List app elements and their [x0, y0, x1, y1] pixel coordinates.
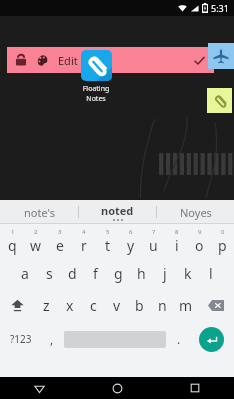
button[interactable]: k: [176, 257, 199, 289]
staticText: ?123: [10, 332, 32, 346]
staticText: 2: [34, 228, 38, 236]
staticText: e: [56, 236, 64, 255]
staticText: q: [8, 236, 17, 255]
staticText: 6: [129, 228, 133, 236]
button[interactable]: Lock: [7, 47, 214, 73]
staticText: i: [175, 236, 179, 255]
button[interactable]: n: [151, 289, 174, 321]
staticText: ,: [50, 331, 54, 347]
staticText: y: [127, 236, 135, 255]
button[interactable]: l: [199, 257, 222, 289]
staticText: Noyes: [180, 205, 212, 220]
staticText: note's: [24, 205, 55, 220]
button[interactable]: 7: [142, 225, 165, 257]
staticText: 8: [175, 228, 179, 236]
button[interactable]: .: [168, 321, 189, 357]
staticText: s: [46, 264, 53, 283]
button[interactable]: 6: [119, 225, 142, 257]
staticText: j: [163, 264, 167, 283]
staticText: r: [81, 236, 87, 255]
button[interactable]: 3: [48, 225, 72, 257]
staticText: 5:31: [211, 2, 229, 14]
staticText: n: [158, 296, 167, 315]
button[interactable]: Attach note: [207, 88, 232, 113]
staticText: v: [113, 296, 121, 315]
staticText: 9: [198, 228, 202, 236]
button[interactable]: d: [61, 257, 84, 289]
staticText: u: [149, 236, 158, 255]
button[interactable]: 9: [188, 225, 211, 257]
staticText: noted: [101, 203, 134, 218]
staticText: k: [184, 264, 192, 283]
button[interactable]: 0: [211, 225, 234, 257]
staticText: 4: [82, 228, 86, 236]
button[interactable]: Airplane mode: [208, 43, 234, 69]
button[interactable]: ,: [41, 321, 62, 357]
staticText: z: [43, 296, 50, 315]
button[interactable]: note's: [0, 200, 78, 224]
staticText: l: [209, 264, 213, 283]
staticText: f: [93, 264, 98, 283]
staticText: g: [114, 264, 123, 283]
button[interactable]: b: [128, 289, 151, 321]
button[interactable]: ?123: [0, 321, 41, 357]
staticText: b: [135, 296, 144, 315]
button[interactable]: Enter: [199, 327, 224, 352]
button[interactable]: 2: [24, 225, 48, 257]
staticText: 5: [106, 228, 110, 236]
button[interactable]: s: [37, 257, 61, 289]
button[interactable]: Backspace: [197, 289, 234, 321]
button[interactable]: a: [13, 257, 37, 289]
button[interactable]: noted: [79, 200, 156, 224]
staticText: c: [90, 296, 97, 315]
button[interactable]: 4: [72, 225, 96, 257]
button[interactable]: m: [174, 289, 197, 321]
button[interactable]: Home: [78, 377, 156, 399]
staticText: Edit: [58, 53, 81, 68]
staticText: a: [21, 264, 29, 283]
button[interactable]: Color palette: [34, 52, 50, 68]
staticText: p: [218, 236, 227, 255]
staticText: t: [105, 236, 111, 255]
button[interactable]: v: [105, 289, 128, 321]
button[interactable]: Shift: [0, 289, 34, 321]
staticText: h: [137, 264, 146, 283]
staticText: x: [66, 296, 74, 315]
button[interactable]: j: [153, 257, 176, 289]
staticText: 1: [11, 228, 15, 236]
staticText: w: [30, 236, 42, 255]
button[interactable]: Floating Notes: [74, 50, 118, 104]
button[interactable]: Done: [190, 51, 208, 69]
button[interactable]: 8: [165, 225, 188, 257]
staticText: d: [68, 264, 77, 283]
button[interactable]: Noyes: [157, 200, 234, 224]
button[interactable]: g: [107, 257, 130, 289]
button[interactable]: Lock: [13, 52, 29, 68]
staticText: 3: [58, 228, 62, 236]
staticText: .: [177, 331, 181, 347]
button[interactable]: 1: [0, 225, 24, 257]
button[interactable]: f: [84, 257, 107, 289]
button[interactable]: h: [130, 257, 153, 289]
button[interactable]: Back: [0, 377, 78, 399]
button[interactable]: Recent apps: [156, 377, 234, 399]
staticText: 0: [221, 228, 225, 236]
button[interactable]: z: [34, 289, 58, 321]
staticText: o: [195, 236, 204, 255]
button[interactable]: c: [82, 289, 105, 321]
button[interactable]: 5: [96, 225, 119, 257]
button[interactable]: x: [58, 289, 82, 321]
staticText: 7: [152, 228, 156, 236]
staticText: m: [179, 296, 193, 315]
staticText: Floating Notes: [74, 84, 118, 104]
staticText: notes: [81, 53, 110, 68]
